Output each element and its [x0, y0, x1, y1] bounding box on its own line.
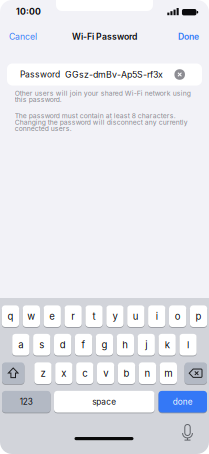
- button[interactable]: i: [148, 305, 165, 327]
- button[interactable]: n: [139, 362, 156, 384]
- button[interactable]: Numbers: [2, 390, 50, 413]
- button[interactable]: k: [158, 333, 176, 356]
- button[interactable]: b: [118, 362, 135, 384]
- button[interactable]: z: [34, 362, 52, 384]
- staticText: h: [122, 339, 128, 350]
- button[interactable]: Done: [178, 29, 199, 43]
- button[interactable]: a: [12, 333, 29, 356]
- button[interactable]: d: [54, 333, 71, 356]
- staticText: done: [173, 397, 193, 407]
- button[interactable]: m: [160, 362, 177, 384]
- staticText: v: [103, 367, 108, 379]
- button[interactable]: g: [96, 333, 113, 356]
- button[interactable]: y: [106, 305, 124, 327]
- button[interactable]: Cancel: [9, 29, 37, 43]
- staticText: Wi-Fi Password: [72, 31, 137, 42]
- staticText: 10:00: [16, 6, 41, 17]
- button[interactable]: r: [64, 305, 82, 327]
- staticText: q: [7, 310, 13, 322]
- button[interactable]: Clear text: [174, 69, 185, 80]
- staticText: o: [175, 310, 181, 322]
- staticText: k: [165, 339, 170, 350]
- staticText: m: [164, 367, 172, 379]
- staticText: y: [112, 310, 117, 322]
- button[interactable]: j: [138, 333, 155, 356]
- button[interactable]: o: [169, 305, 186, 327]
- staticText: d: [60, 339, 66, 350]
- staticText: j: [145, 339, 147, 350]
- staticText: p: [195, 310, 201, 322]
- staticText: The password must contain at least 8 cha…: [15, 112, 176, 120]
- staticText: w: [27, 310, 35, 322]
- staticText: Password: [20, 69, 60, 80]
- staticText: z: [40, 367, 45, 379]
- button[interactable]: Shift: [2, 362, 24, 384]
- staticText: Changing the password will disconnect an…: [15, 118, 188, 126]
- staticText: r: [71, 310, 75, 322]
- staticText: n: [144, 367, 150, 379]
- staticText: x: [61, 367, 66, 379]
- staticText: e: [49, 310, 55, 322]
- button[interactable]: s: [33, 333, 50, 356]
- staticText: u: [133, 310, 139, 322]
- button[interactable]: t: [85, 305, 103, 327]
- staticText: Done: [178, 31, 199, 42]
- button[interactable]: u: [127, 305, 144, 327]
- button[interactable]: h: [117, 333, 134, 356]
- button[interactable]: e: [44, 305, 61, 327]
- staticText: Other users will join your shared Wi-Fi …: [15, 89, 191, 97]
- button[interactable]: f: [75, 333, 92, 356]
- staticText: i: [156, 310, 158, 322]
- staticText: g: [101, 339, 107, 350]
- button[interactable]: Dictation: [179, 422, 195, 444]
- button[interactable]: done: [158, 390, 207, 413]
- staticText: space: [92, 397, 116, 407]
- staticText: c: [82, 367, 87, 379]
- button[interactable]: v: [97, 362, 114, 384]
- staticText: f: [81, 339, 85, 350]
- button[interactable]: q: [2, 305, 19, 327]
- staticText: s: [39, 339, 44, 350]
- staticText: t: [92, 310, 95, 322]
- button[interactable]: p: [190, 305, 207, 327]
- button[interactable]: c: [76, 362, 93, 384]
- staticText: GGsz-dmBv-Ap5S-rf3x: [65, 69, 163, 80]
- button[interactable]: x: [55, 362, 72, 384]
- staticText: connected users.: [15, 124, 72, 133]
- button[interactable]: w: [23, 305, 40, 327]
- button[interactable]: Delete: [185, 362, 207, 384]
- staticText: 123: [20, 397, 33, 407]
- staticText: l: [187, 339, 189, 350]
- button[interactable]: space: [54, 390, 154, 413]
- button[interactable]: l: [179, 333, 197, 356]
- staticText: a: [18, 339, 23, 350]
- staticText: this password.: [15, 95, 62, 104]
- staticText: b: [123, 367, 129, 379]
- staticText: Cancel: [9, 31, 37, 42]
